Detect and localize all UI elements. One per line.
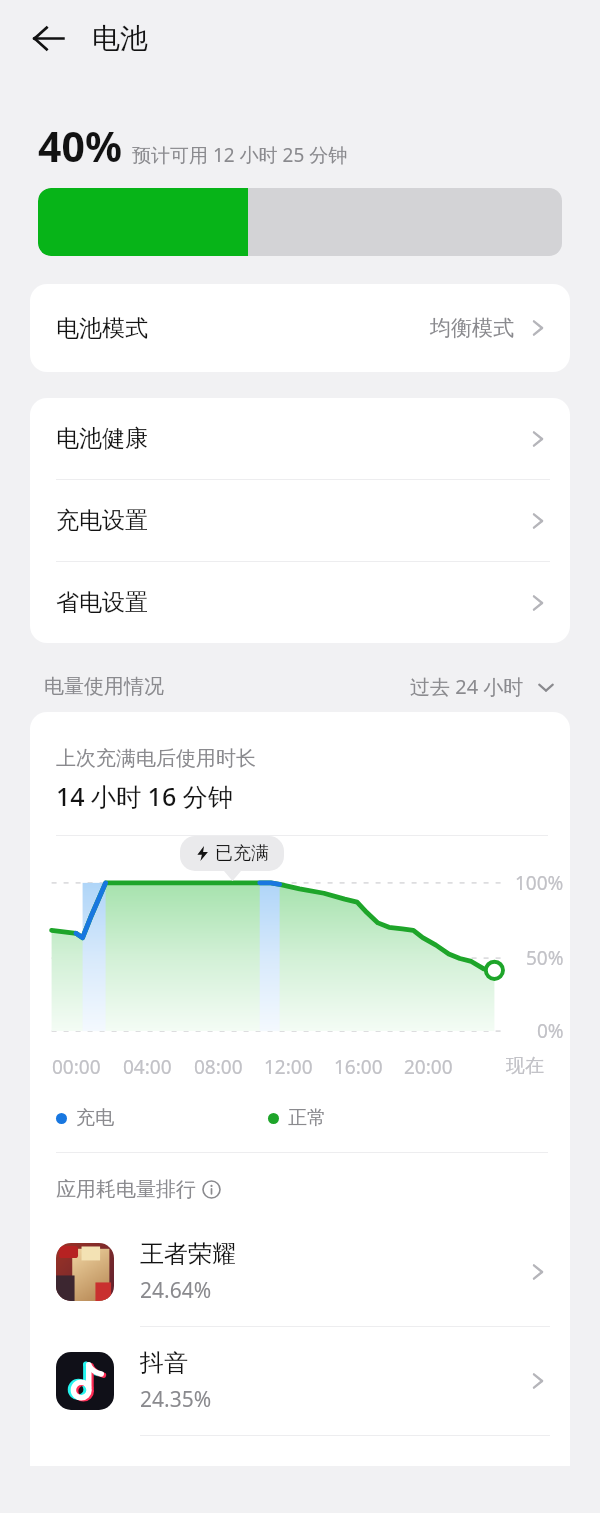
staticText: 16:00 (334, 1054, 404, 1080)
staticText: 24.64% (140, 1276, 212, 1305)
button[interactable]: 王者荣耀 (30, 1218, 570, 1327)
staticText: 过去 24 小时 (410, 673, 524, 700)
staticText: 预计可用 12 小时 25 分钟 (132, 142, 348, 168)
staticText: 电池 (92, 21, 148, 56)
button[interactable]: Back (20, 10, 76, 66)
button[interactable]: 电池健康 (30, 398, 570, 480)
staticText: 现在 (474, 1054, 544, 1078)
staticText: 20:00 (404, 1054, 474, 1080)
button[interactable]: 省电设置 (30, 562, 570, 643)
staticText: 04:00 (123, 1054, 194, 1080)
staticText: 0% (537, 1018, 564, 1044)
staticText: 充电设置 (56, 506, 148, 535)
staticText: 50% (526, 945, 564, 971)
staticText: 40% (38, 118, 122, 174)
staticText: 均衡模式 (430, 315, 514, 341)
staticText: 00:00 (52, 1054, 123, 1080)
button[interactable]: 电池模式 (30, 284, 570, 372)
staticText: 应用耗电量排行 (56, 1177, 196, 1202)
staticText: 12:00 (264, 1054, 334, 1080)
staticText: 100% (515, 870, 564, 896)
staticText: 上次充满电后使用时长 (56, 746, 256, 771)
staticText: 王者荣耀 (140, 1239, 236, 1269)
button[interactable]: 抖音 (30, 1327, 570, 1436)
staticText: 电池健康 (56, 424, 148, 453)
staticText: 14 小时 16 分钟 (56, 779, 233, 813)
staticText: 充电 (76, 1106, 114, 1130)
staticText: 抖音 (140, 1348, 188, 1378)
staticText: 省电设置 (56, 588, 148, 617)
staticText: 正常 (288, 1106, 326, 1130)
staticText: 电量使用情况 (44, 674, 164, 699)
staticText: 已充满 (215, 842, 269, 865)
button[interactable]: 充电设置 (30, 480, 570, 562)
staticText: 24.35% (140, 1385, 212, 1414)
staticText: 电池模式 (56, 314, 148, 343)
staticText: 08:00 (194, 1054, 264, 1080)
button[interactable]: 电量使用情况 (44, 673, 556, 700)
